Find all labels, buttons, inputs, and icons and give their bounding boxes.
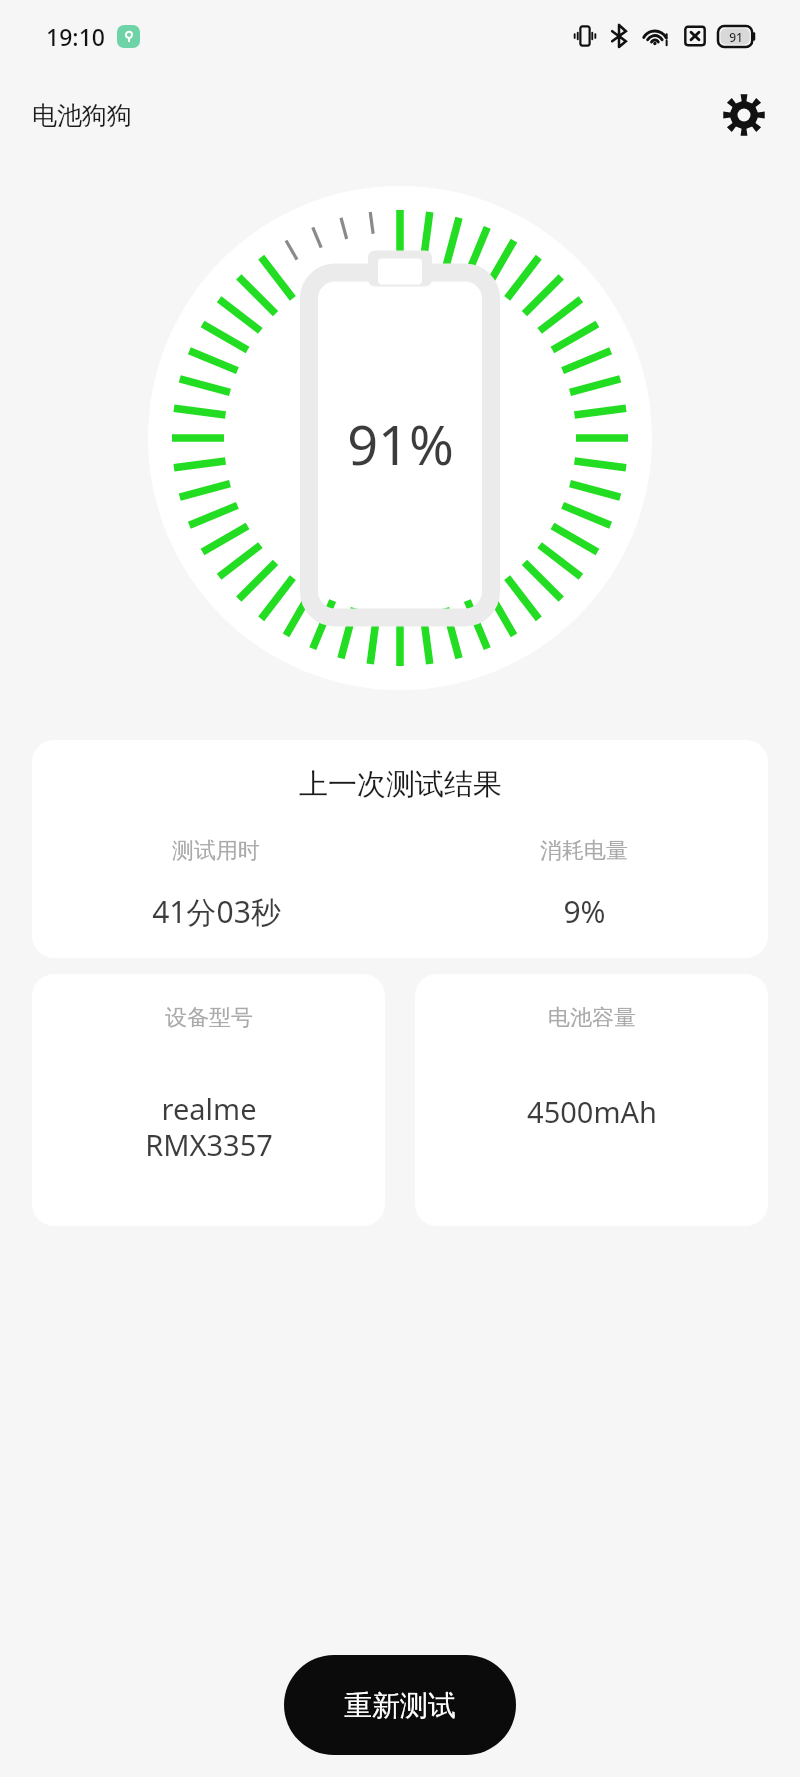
staticText: 电池容量 (548, 1004, 636, 1032)
button[interactable]: Settings (716, 87, 772, 143)
staticText: 41分03秒 (152, 891, 281, 932)
staticText: 91% (347, 407, 454, 481)
staticText: 91 (729, 29, 743, 45)
staticText: 19:10 (46, 21, 105, 52)
staticText: 测试用时 (172, 837, 260, 865)
staticText: 电池狗狗 (32, 100, 132, 131)
staticText: 设备型号 (165, 1004, 253, 1032)
staticText: 消耗电量 (540, 837, 628, 865)
staticText: 重新测试 (344, 1688, 456, 1723)
staticText: 9% (563, 891, 606, 932)
staticText: 上一次测试结果 (299, 766, 502, 803)
button[interactable]: 设备型号 (32, 974, 385, 1226)
button[interactable]: 电池容量 (415, 974, 768, 1226)
button[interactable]: 重新测试 (284, 1655, 516, 1755)
staticText: realme RMX3357 (145, 1089, 273, 1165)
staticText: 4500mAh (527, 1092, 657, 1131)
button[interactable]: 上一次测试结果 (32, 740, 768, 958)
